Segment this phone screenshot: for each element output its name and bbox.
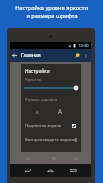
staticText: Воспроизводить подсказки [25,137,76,143]
button[interactable]: Меню [82,52,90,60]
button[interactable]: Воспроизводить подсказки [21,134,81,146]
staticText: Настройка уровня яркости [15,4,88,12]
button[interactable]: Back [22,165,33,176]
staticText: Яркость [25,77,42,83]
staticText: A [36,110,39,115]
staticText: Подсветка экрана [25,123,62,129]
button[interactable]: Помощь [73,51,82,60]
button[interactable]: Home [45,165,56,176]
button[interactable]: Назад [10,51,19,60]
staticText: Размер шрифта [25,97,58,103]
staticText: 12:30 [78,43,89,49]
staticText: Главная [21,52,41,59]
button[interactable]: Recents [68,165,79,176]
staticText: A [58,107,63,116]
button[interactable]: Подсветка экрана [21,120,81,132]
staticText: Настройки [25,68,50,74]
staticText: и размера шрифта [26,12,78,20]
